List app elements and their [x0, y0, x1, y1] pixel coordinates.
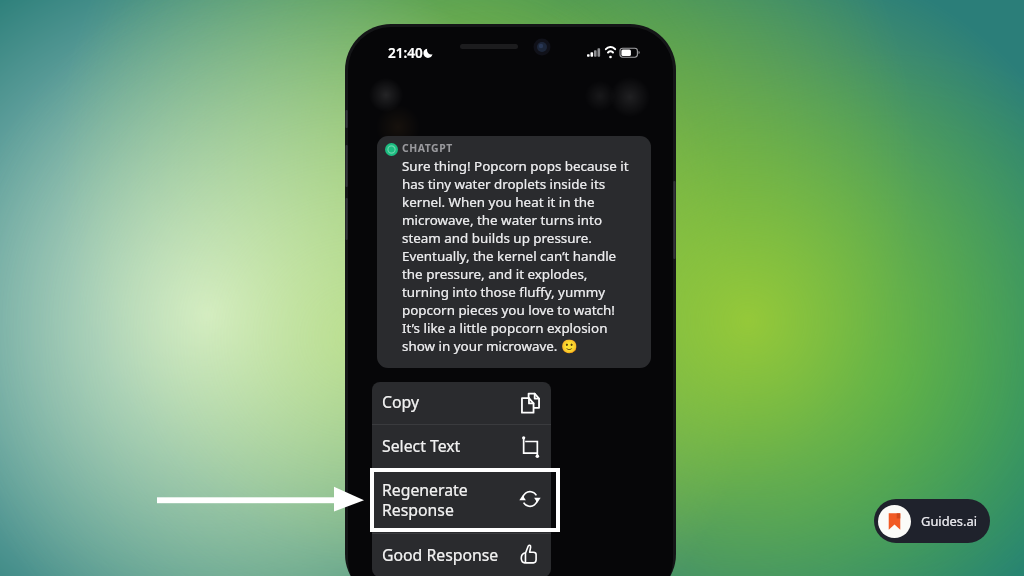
staticText: Guides.ai [921, 512, 978, 530]
button[interactable]: Copy [372, 382, 551, 424]
button[interactable]: Guides.ai [874, 499, 990, 543]
other: Good Response [521, 545, 540, 566]
button[interactable]: Select Text [372, 425, 551, 468]
other: Copy [521, 392, 540, 414]
other: Select Text [521, 436, 540, 458]
staticText: Regenerate Response [382, 479, 468, 521]
staticText: 21:40 [388, 44, 423, 62]
staticText: CHATGPT [402, 141, 453, 155]
button[interactable]: Regenerate Response [372, 469, 551, 533]
staticText: Sure thing! Popcorn pops because it has … [402, 157, 629, 355]
button[interactable]: Good Response [372, 534, 551, 576]
staticText: Copy [382, 391, 419, 413]
staticText: Select Text [382, 435, 461, 457]
other: Regenerate Response [520, 492, 540, 510]
staticText: Good Response [382, 544, 499, 566]
